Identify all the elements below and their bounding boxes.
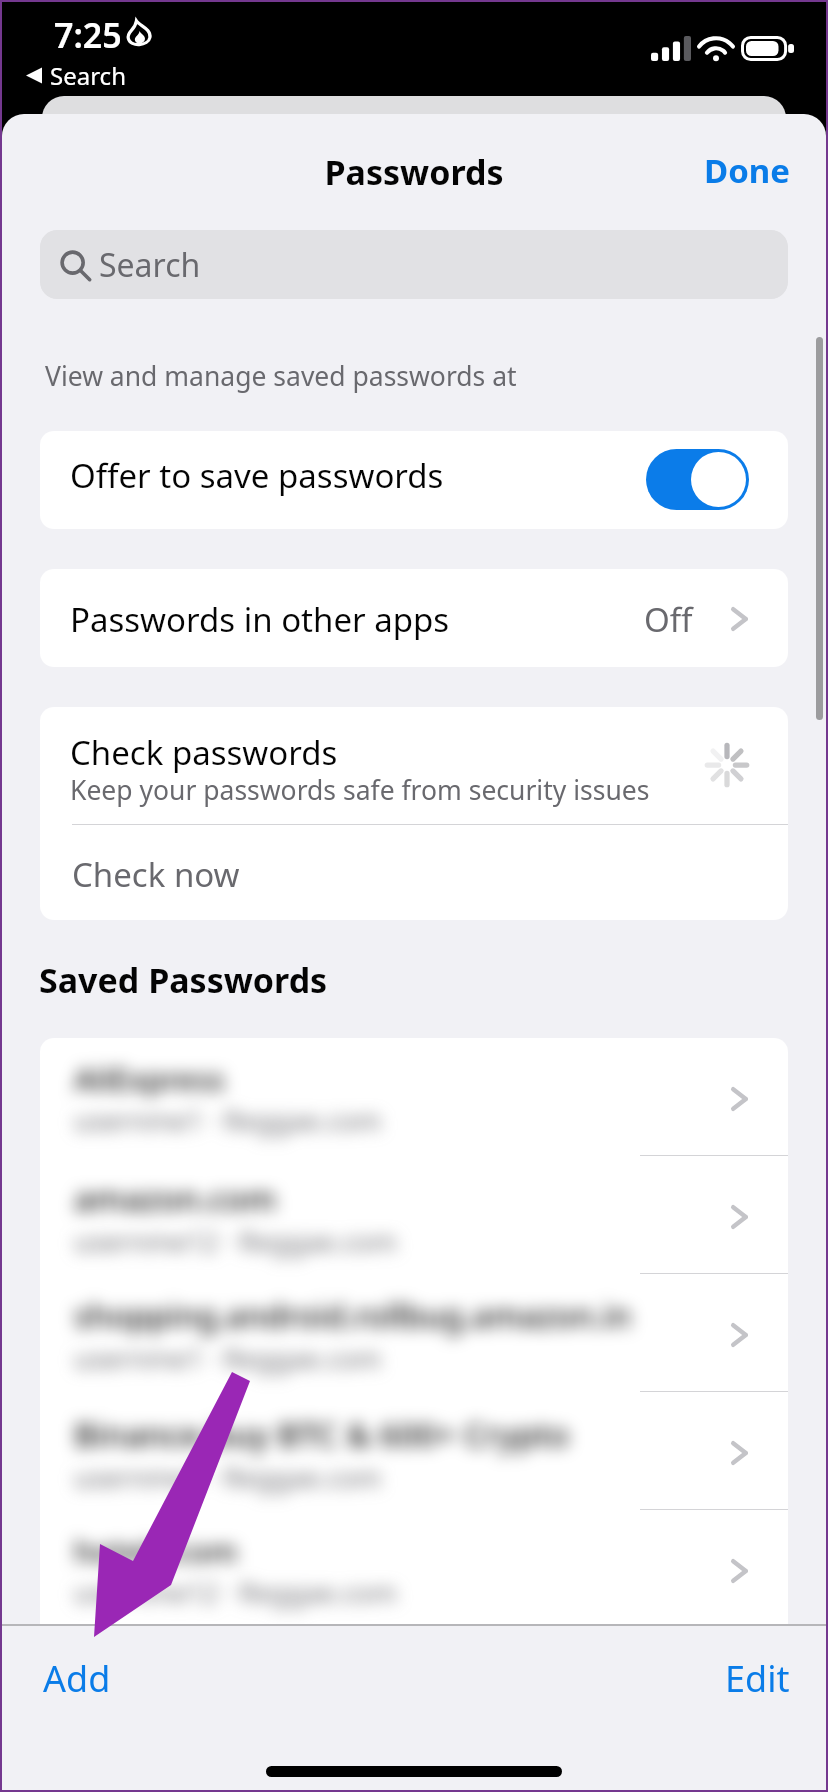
staticText: usernme12 · Reggae.com [74, 1223, 397, 1260]
staticText: amazon.com [74, 1176, 277, 1221]
button[interactable]: Back to Search [26, 59, 126, 92]
button[interactable]: AliExpress [40, 1038, 788, 1156]
staticText: Check now [72, 852, 240, 897]
staticText: Search [50, 59, 126, 92]
staticText: hotels.com [74, 1530, 238, 1572]
staticText: Binance-buy BTC & 600+ Crypto [74, 1412, 570, 1457]
staticText: shopping.android.rollbug.amazon.in [74, 1294, 632, 1338]
button[interactable]: Done [685, 121, 809, 220]
button[interactable]: Search [40, 230, 788, 299]
staticText: Check passwords [70, 730, 338, 775]
button[interactable]: hotels.com [40, 1510, 788, 1624]
staticText: Edit [725, 1654, 790, 1703]
button[interactable]: Offer to save passwords [40, 431, 788, 529]
staticText: View and manage saved passwords at [45, 358, 517, 394]
staticText: Add [43, 1654, 111, 1703]
button[interactable]: Check passwords [40, 707, 788, 824]
staticText: 7:25 [54, 12, 122, 58]
button[interactable]: Passwords in other apps [40, 569, 788, 667]
button[interactable]: Binance-buy BTC & 600+ Crypto [40, 1392, 788, 1510]
staticText: Passwords in other apps [70, 597, 450, 642]
button[interactable]: Edit [699, 1634, 816, 1723]
staticText: AliExpress [74, 1058, 225, 1100]
staticText: usernme1 · Reggae.com [74, 1102, 382, 1139]
staticText: Done [704, 148, 790, 193]
staticText: usernme1 · Reggae.com [74, 1459, 382, 1496]
button[interactable]: Add [17, 1634, 137, 1723]
staticText: Search [99, 243, 201, 287]
button[interactable]: shopping.android.rollbug.amazon.in [40, 1274, 788, 1392]
staticText: Saved Passwords [39, 957, 328, 1003]
staticText: usernme1 · Reggae.com [74, 1340, 382, 1377]
button[interactable]: Check now [40, 825, 788, 920]
staticText: Keep your passwords safe from security i… [70, 772, 650, 808]
staticText: Offer to save passwords [70, 453, 444, 498]
staticText: Off [644, 597, 693, 642]
button[interactable]: Offer to save passwords toggle [646, 449, 749, 510]
other: Checking [706, 744, 748, 786]
staticText: Passwords [2, 149, 826, 195]
staticText: usernme12 · Reggae.com [74, 1574, 397, 1611]
button[interactable]: amazon.com [40, 1156, 788, 1274]
